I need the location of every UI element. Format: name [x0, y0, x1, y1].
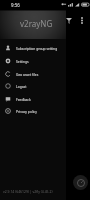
button[interactable]: Feedback: [0, 92, 66, 105]
button[interactable]: Subscription group setting: [0, 41, 66, 54]
staticText: Settings: [16, 59, 29, 63]
staticText: Logcat: [16, 84, 27, 88]
button[interactable]: More options: [75, 14, 88, 27]
button[interactable]: Filter: [62, 14, 75, 27]
button[interactable]: Settings: [0, 54, 66, 67]
staticText: v2.9.14 (646129) | v2fly (4.45.2): [3, 189, 53, 194]
staticText: Privacy policy: [16, 109, 37, 113]
staticText: 9:56: [11, 2, 20, 8]
staticText: Feedback: [16, 97, 31, 101]
button[interactable]: Test connection: [73, 175, 88, 190]
button[interactable]: Geo asset files: [0, 67, 66, 80]
button[interactable]: Logcat: [0, 79, 66, 92]
staticText: Subscription group setting: [16, 46, 58, 50]
button[interactable]: Privacy policy: [0, 104, 66, 117]
staticText: v2rayNG: [20, 18, 53, 29]
staticText: Geo asset files: [16, 72, 39, 76]
